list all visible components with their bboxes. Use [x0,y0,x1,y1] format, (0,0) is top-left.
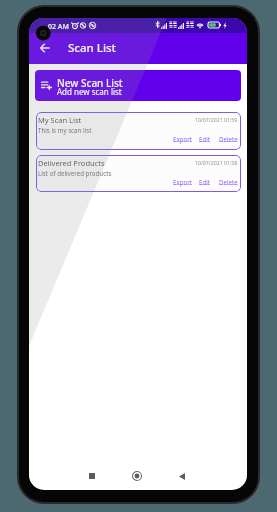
button[interactable]: Export [173,178,193,186]
staticText: List of delivered products [38,169,112,177]
button[interactable]: Home [130,469,144,483]
staticText: New Scan List [57,76,123,90]
staticText: 10/07/2021 01:59 [195,116,238,123]
staticText: Export [173,135,193,143]
button[interactable]: New Scan List [35,70,241,101]
button[interactable]: Edit [199,178,211,186]
button[interactable]: My Scan List [36,112,241,150]
staticText: Add new scan list [57,86,122,97]
staticText: My Scan List [38,115,82,125]
button[interactable]: Back [31,34,59,62]
staticText: 10/07/2021 01:58 [195,159,238,166]
staticText: 02 AM [48,22,69,32]
button[interactable]: Recents [85,469,99,483]
button[interactable]: Export [173,135,193,143]
staticText: Delete [219,135,238,143]
button[interactable]: Edit [199,135,211,143]
button[interactable]: Delivered Products [36,155,241,192]
button[interactable]: Delete [219,135,238,143]
staticText: Delivered Products [38,158,105,168]
staticText: Edit [199,178,211,186]
staticText: Export [173,178,193,186]
staticText: This is my scan list [38,126,92,134]
staticText: Delete [219,178,238,186]
button[interactable]: Delete [219,178,238,186]
button[interactable]: Back [175,469,189,483]
staticText: Edit [199,135,211,143]
staticText: Scan List [68,40,116,56]
